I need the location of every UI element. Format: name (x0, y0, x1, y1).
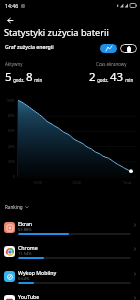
staticText: Chrome (18, 244, 38, 251)
staticText: 11.54% (18, 251, 32, 256)
staticText: YouTube (18, 293, 40, 300)
staticText: godz. (12, 77, 26, 83)
staticText: Czas ekranowy (96, 61, 127, 67)
staticText: 53.88% (18, 227, 32, 232)
staticText: 100% (6, 98, 15, 103)
staticText: 14:46 (5, 2, 19, 9)
staticText: min (33, 77, 43, 83)
staticText: godz. (96, 77, 110, 83)
staticText: Wykop Mobilny (18, 269, 57, 276)
staticText: Aktywny (5, 61, 23, 67)
staticText: 40% (8, 144, 15, 149)
button[interactable]: Ranking (5, 204, 29, 210)
staticText: 0 (13, 174, 15, 179)
staticText: Statystyki zużycia baterii (4, 26, 109, 39)
staticText: 80% (8, 113, 15, 118)
button[interactable]: Ekran (0, 217, 140, 242)
staticText: 2 (89, 69, 96, 85)
staticText: 43 (110, 69, 124, 85)
staticText: 8 (26, 69, 33, 85)
staticText: 10:00 (33, 180, 42, 185)
button[interactable]: Chrome (0, 241, 140, 266)
button[interactable]: Graph view (100, 44, 117, 53)
button[interactable]: Battery list view (120, 44, 137, 53)
staticText: 6.64% (18, 276, 30, 281)
staticText: Ranking (5, 204, 23, 210)
staticText: Ekran (18, 220, 33, 227)
staticText: 5 (5, 69, 12, 85)
button[interactable]: YouTube (0, 290, 140, 300)
staticText: min (124, 77, 134, 83)
staticText: 60% (8, 128, 15, 133)
staticText: 12:00 (72, 180, 81, 185)
button[interactable]: Wykop Mobilny (0, 266, 140, 291)
staticText: 20% (8, 159, 15, 164)
staticText: Teraz (123, 180, 132, 185)
staticText: Graf zużycia energii (5, 43, 54, 50)
button[interactable]: Back (2, 13, 16, 27)
